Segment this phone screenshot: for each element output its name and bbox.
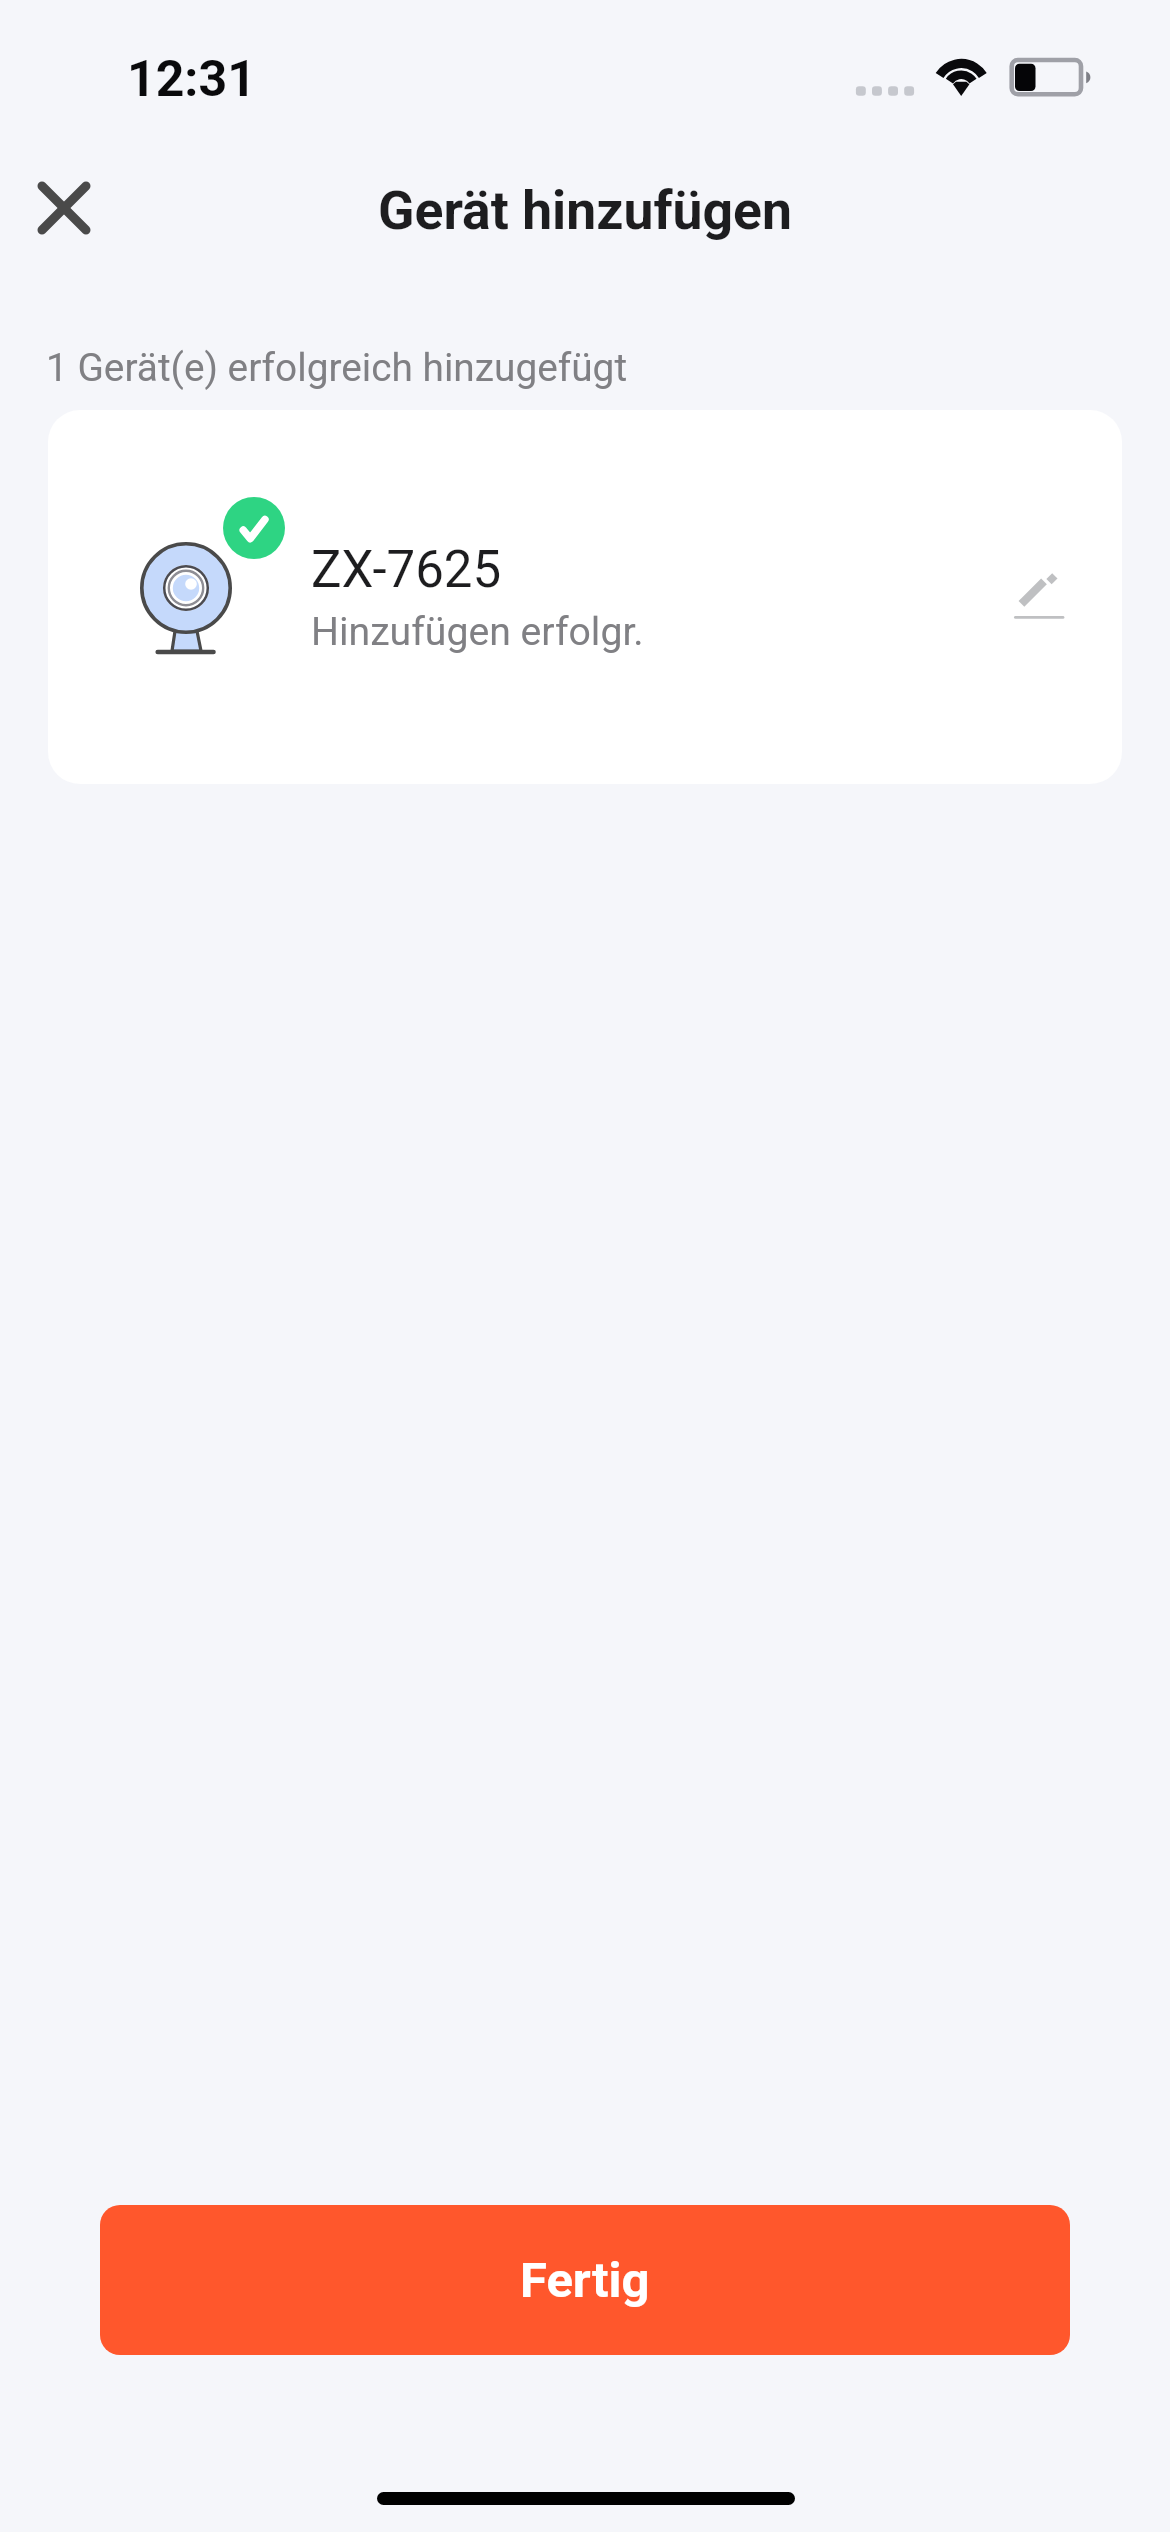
- button[interactable]: Close: [23, 167, 105, 249]
- button[interactable]: Fertig: [100, 2205, 1070, 2355]
- staticText: ZX-7625: [311, 540, 502, 600]
- button[interactable]: Rename device: [994, 553, 1082, 641]
- button[interactable]: ZX-7625: [48, 410, 1122, 784]
- staticText: 1 Gerät(e) erfolgreich hinzugefügt: [46, 345, 628, 390]
- staticText: Hinzufügen erfolgr.: [311, 609, 644, 655]
- staticText: Gerät hinzufügen: [0, 179, 1170, 269]
- staticText: 12:31: [127, 50, 256, 109]
- staticText: Fertig: [520, 2252, 650, 2309]
